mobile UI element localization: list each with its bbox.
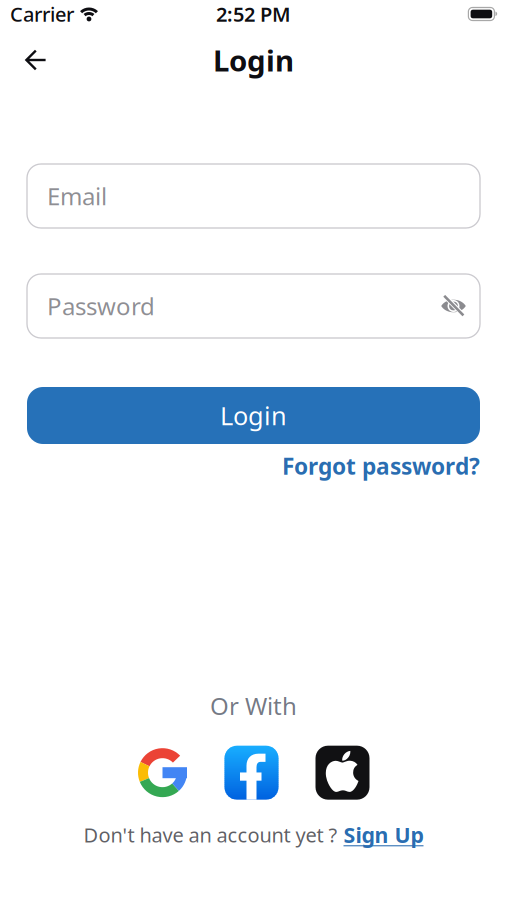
staticText: 2:52 PM — [216, 1, 291, 27]
staticText: Email — [47, 180, 107, 212]
staticText: Carrier — [10, 1, 74, 27]
button[interactable]: Show password — [440, 295, 467, 317]
staticText: Sign Up — [343, 821, 423, 849]
staticText: Forgot password? — [282, 451, 480, 481]
button[interactable]: Sign Up — [343, 821, 423, 849]
button[interactable]: Sign in with Facebook — [224, 746, 278, 800]
button[interactable]: Forgot password? — [282, 451, 480, 481]
staticText: Password — [47, 290, 155, 322]
button[interactable]: Back — [0, 49, 47, 71]
staticText: Login — [213, 40, 294, 79]
button[interactable]: Login — [27, 387, 480, 444]
staticText: Login — [220, 399, 287, 432]
staticText: Or With — [210, 690, 297, 722]
button[interactable]: Sign in with Google — [137, 748, 187, 798]
button[interactable]: Sign in with Apple — [315, 746, 369, 800]
staticText: Don't have an account yet ? — [83, 822, 337, 848]
